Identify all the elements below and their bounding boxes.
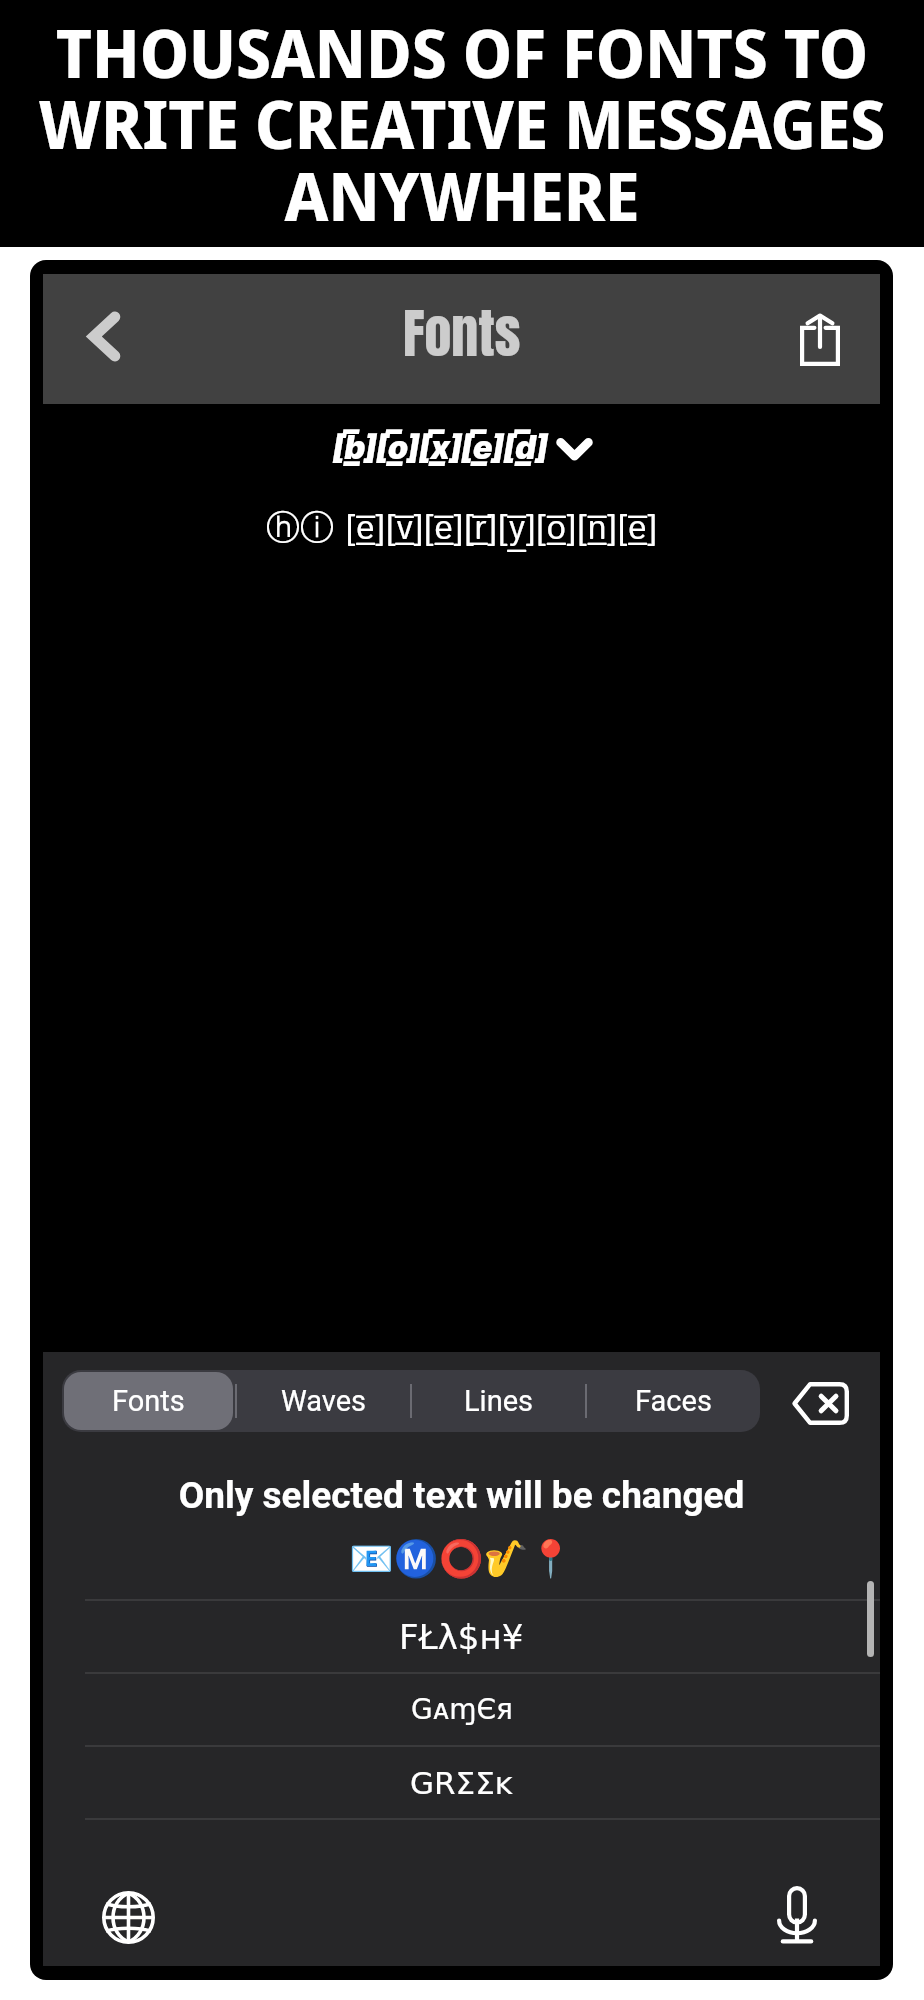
button[interactable]: Share <box>759 274 880 404</box>
staticText: Fonts <box>112 1384 185 1418</box>
staticText: Waves <box>281 1384 367 1418</box>
staticText: GᴀɱЄя <box>411 1693 513 1726</box>
button[interactable]: Faces <box>589 1372 758 1430</box>
staticText: Lines <box>464 1384 534 1418</box>
button[interactable]: Change keyboard language <box>88 1877 168 1957</box>
staticText: FŁλ$ʜ¥ <box>399 1617 524 1657</box>
button[interactable]: Lines <box>414 1372 583 1430</box>
button[interactable]: GᴀɱЄя <box>43 1674 880 1745</box>
staticText: Faces <box>635 1384 712 1418</box>
button[interactable]: Fonts <box>64 1372 233 1430</box>
staticText: Fonts <box>403 292 521 373</box>
staticText: GRΣΣᴋ <box>410 1765 513 1801</box>
button[interactable]: Backspace <box>760 1372 879 1434</box>
button[interactable]: GRΣΣᴋ <box>43 1747 880 1818</box>
button[interactable]: Voice input <box>757 1875 837 1955</box>
staticText: 📧Ⓜ️⭕🎷📍 <box>349 1538 574 1580</box>
button[interactable]: Waves <box>239 1372 408 1430</box>
staticText: [b̲̅][o̲̅][x̲̅][e̲̅][d̲̅] <box>333 428 548 467</box>
button[interactable]: Back <box>43 274 165 404</box>
staticText: Only selected text will be changed <box>43 1474 880 1517</box>
staticText: THOUSANDS OF FONTS TO WRITE CREATIVE MES… <box>16 7 908 240</box>
staticText: ⓗⓘ [e̲̅][v̲̅][e̲̅][r̲̅][y̲̅][o̲̅][n̲̅][e… <box>266 505 658 554</box>
button[interactable]: FŁλ$ʜ¥ <box>43 1601 880 1672</box>
